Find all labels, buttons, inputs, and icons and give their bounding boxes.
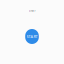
staticText: START: [26, 34, 37, 39]
button[interactable]: START: [25, 29, 39, 44]
staticText: Timer: [28, 9, 35, 13]
